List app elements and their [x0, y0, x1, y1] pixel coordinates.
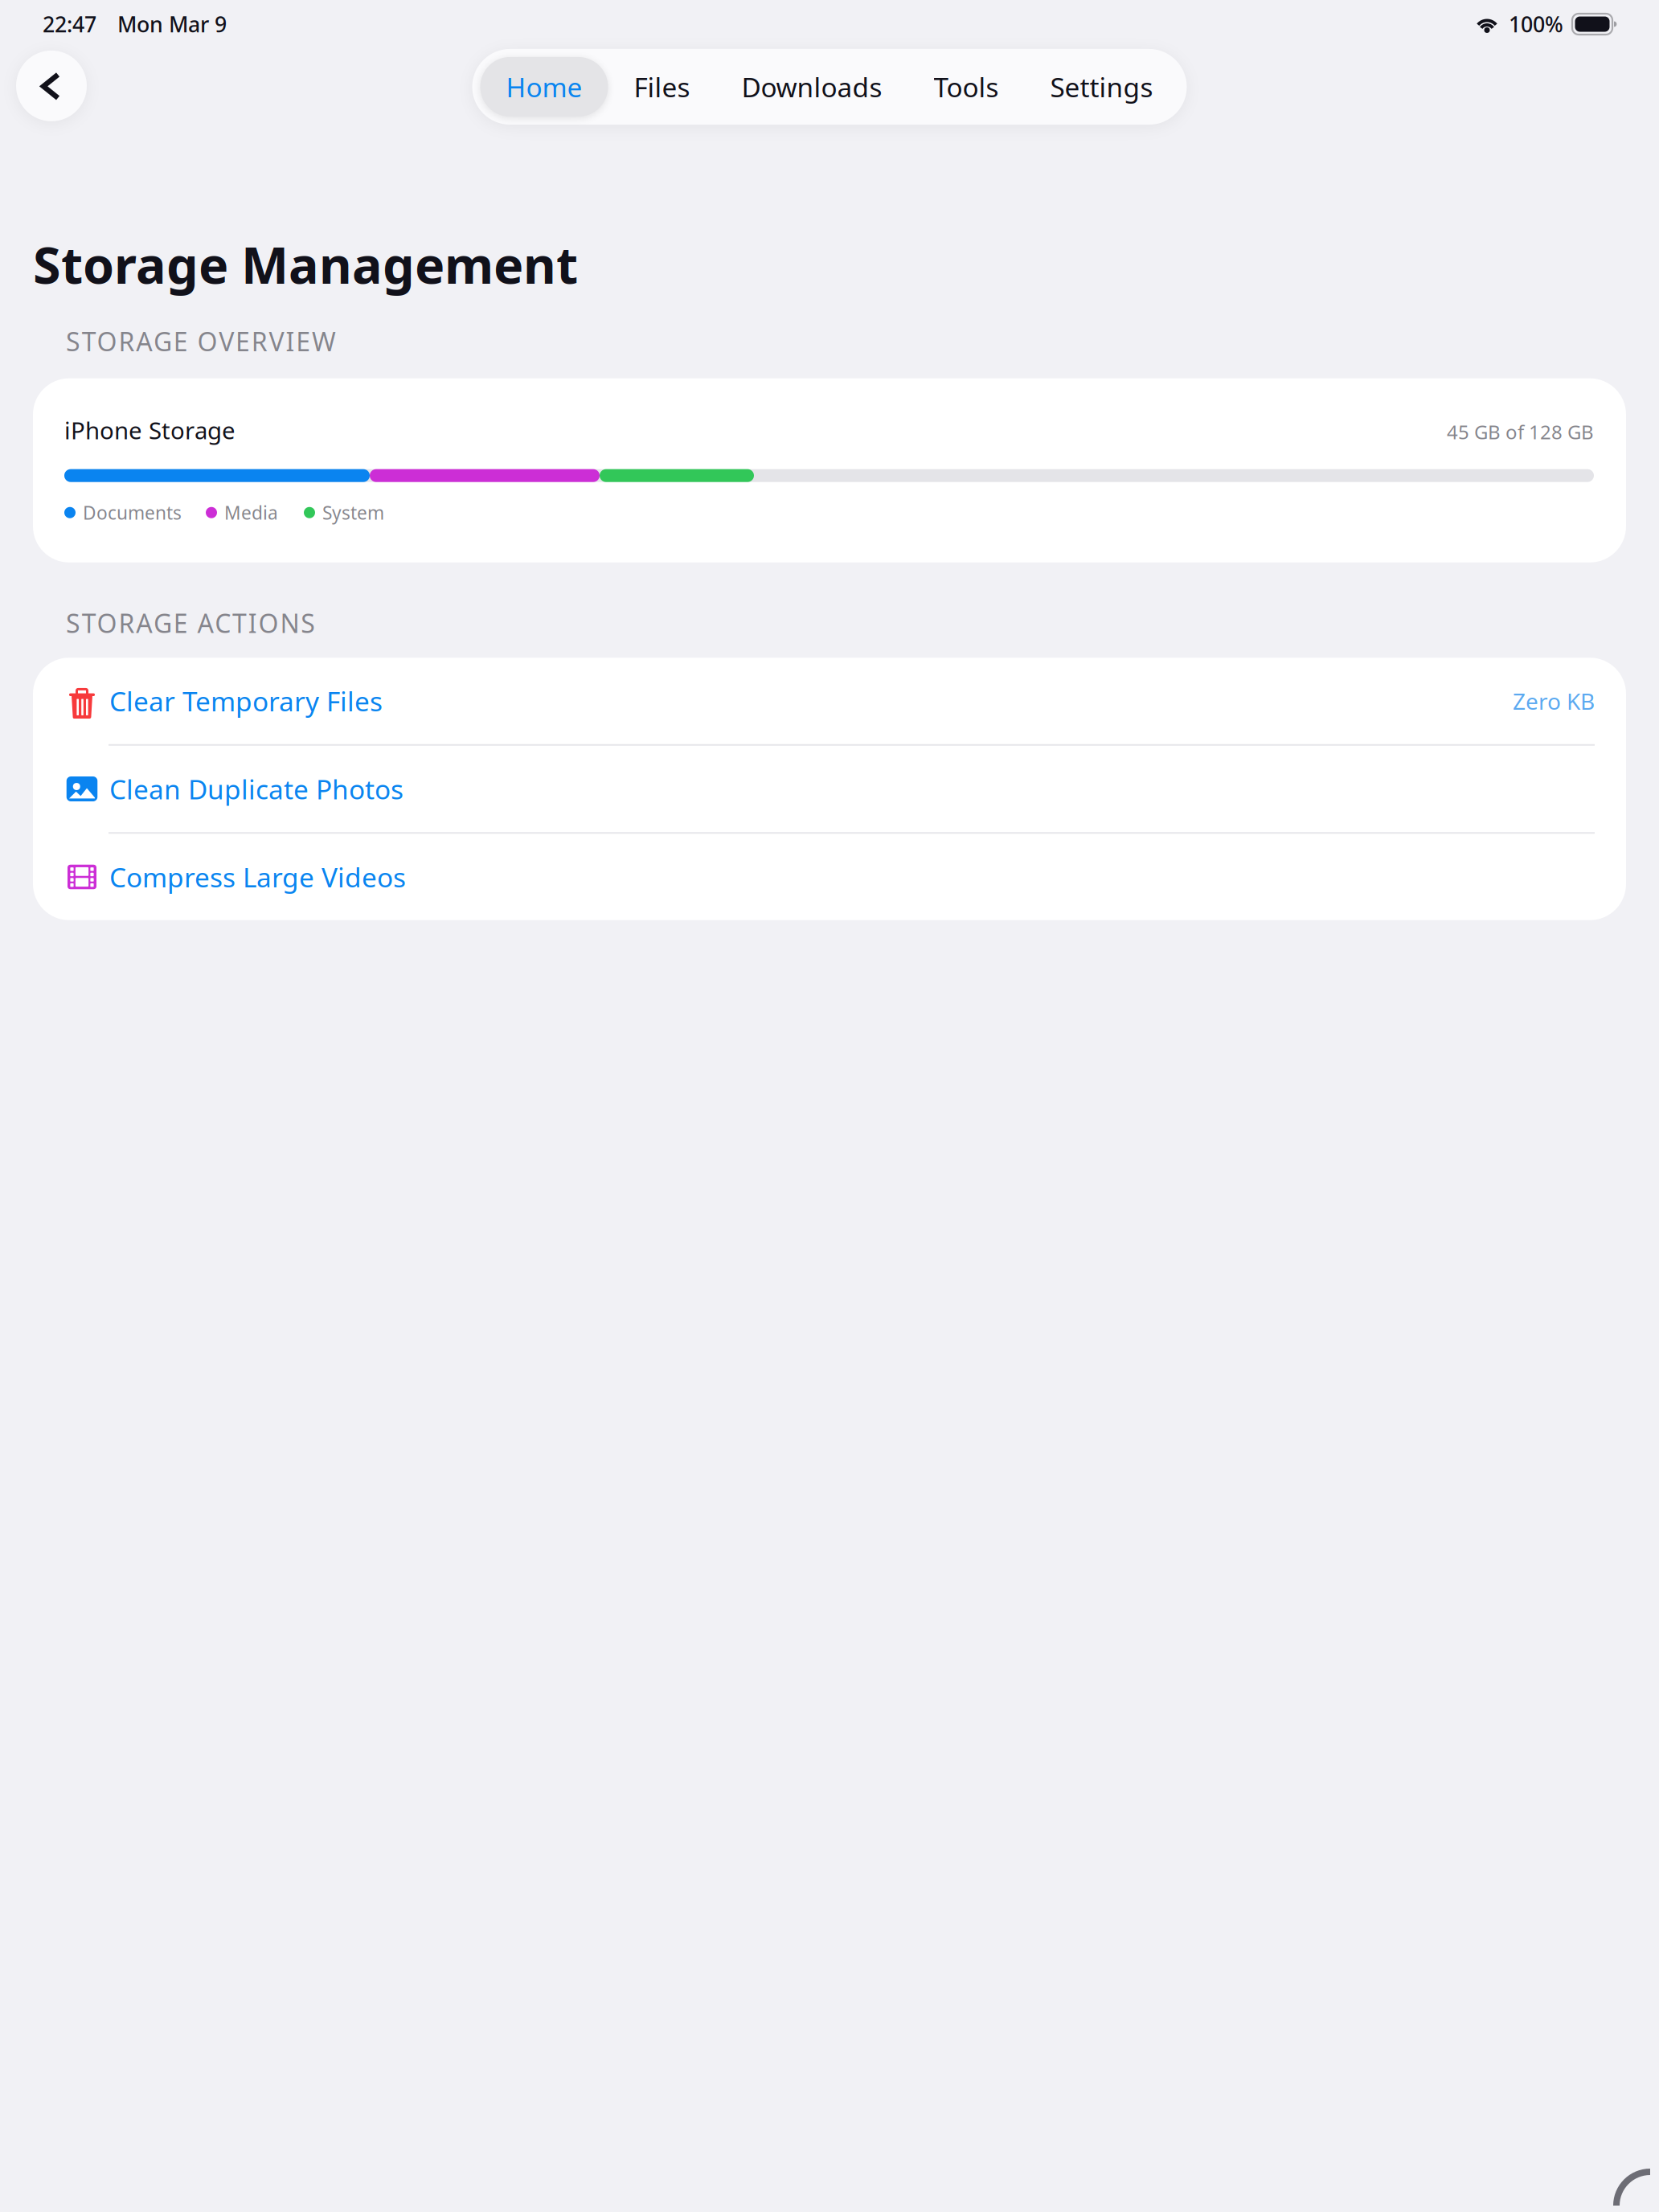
staticText: Tools	[934, 69, 999, 105]
staticText: Mon Mar 9	[117, 10, 227, 38]
staticText: Settings	[1050, 69, 1153, 105]
staticText: Zero KB	[1513, 686, 1595, 716]
button[interactable]: Clean Duplicate Photos	[33, 746, 1626, 832]
staticText: Files	[634, 69, 690, 105]
button[interactable]: Tools	[908, 57, 1024, 117]
button[interactable]: Clear Temporary Files	[33, 658, 1626, 744]
staticText: Storage Management	[33, 231, 578, 298]
staticText: Downloads	[741, 69, 882, 105]
button[interactable]: Settings	[1024, 57, 1179, 117]
button[interactable]: Files	[608, 57, 716, 117]
button[interactable]: Downloads	[716, 57, 908, 117]
staticText: 22:47	[43, 10, 96, 38]
staticText: Clean Duplicate Photos	[109, 771, 403, 807]
staticText: 100%	[1509, 10, 1563, 38]
staticText: Compress Large Videos	[109, 859, 406, 895]
staticText: Home	[506, 69, 582, 105]
button[interactable]: Compress Large Videos	[33, 834, 1626, 920]
button[interactable]: Home	[480, 57, 608, 117]
button[interactable]: Back	[16, 51, 87, 121]
staticText: System	[322, 501, 384, 525]
staticText: Clear Temporary Files	[109, 683, 383, 719]
staticText: STORAGE OVERVIEW	[66, 324, 336, 358]
staticText: iPhone Storage	[64, 415, 236, 446]
staticText: Documents	[83, 501, 182, 525]
staticText: STORAGE ACTIONS	[66, 606, 315, 640]
staticText: 45 GB of 128 GB	[1447, 419, 1594, 445]
staticText: Media	[224, 501, 278, 525]
